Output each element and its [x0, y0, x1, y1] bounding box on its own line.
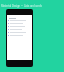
- button[interactable]: [7, 34, 32, 37]
- button[interactable]: [7, 28, 32, 31]
- button[interactable]: [7, 25, 32, 28]
- button[interactable]: [7, 22, 32, 25]
- button[interactable]: [7, 31, 32, 34]
- staticText: Material Design • Lists and cards: [1, 4, 42, 8]
- button[interactable]: [7, 19, 32, 22]
